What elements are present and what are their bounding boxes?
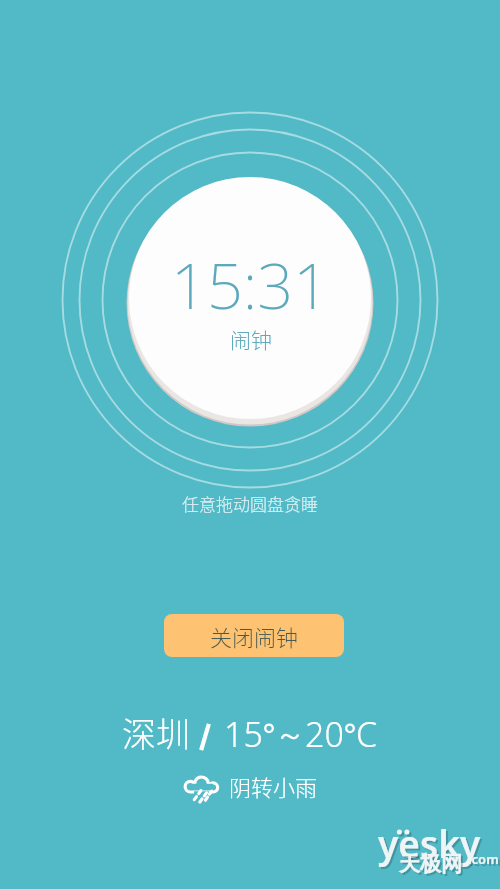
staticText: ～ bbox=[275, 716, 305, 754]
staticText: 阴转小雨 bbox=[229, 770, 318, 802]
staticText: 任意拖动圆盘贪睡 bbox=[182, 491, 318, 516]
staticText: 20 bbox=[305, 711, 344, 757]
staticText: yesky bbox=[378, 818, 481, 868]
button[interactable]: 关闭闹钟 bbox=[164, 614, 344, 657]
staticText: 天极网 bbox=[401, 853, 464, 879]
staticText: 关闭闹钟 bbox=[210, 620, 299, 652]
staticText: 深圳 bbox=[122, 708, 190, 757]
staticText: 闹钟 bbox=[230, 324, 272, 354]
staticText: 15:31 bbox=[171, 242, 330, 328]
staticText: 15 bbox=[224, 711, 263, 757]
other: Weather: light rain bbox=[183, 775, 220, 804]
staticText: yesky bbox=[380, 820, 483, 870]
staticText: C bbox=[356, 711, 378, 757]
staticText: .com bbox=[468, 850, 499, 868]
staticText: 天极网 bbox=[399, 851, 462, 877]
button[interactable]: 15:31 bbox=[129, 177, 371, 419]
staticText: .com bbox=[470, 852, 500, 870]
